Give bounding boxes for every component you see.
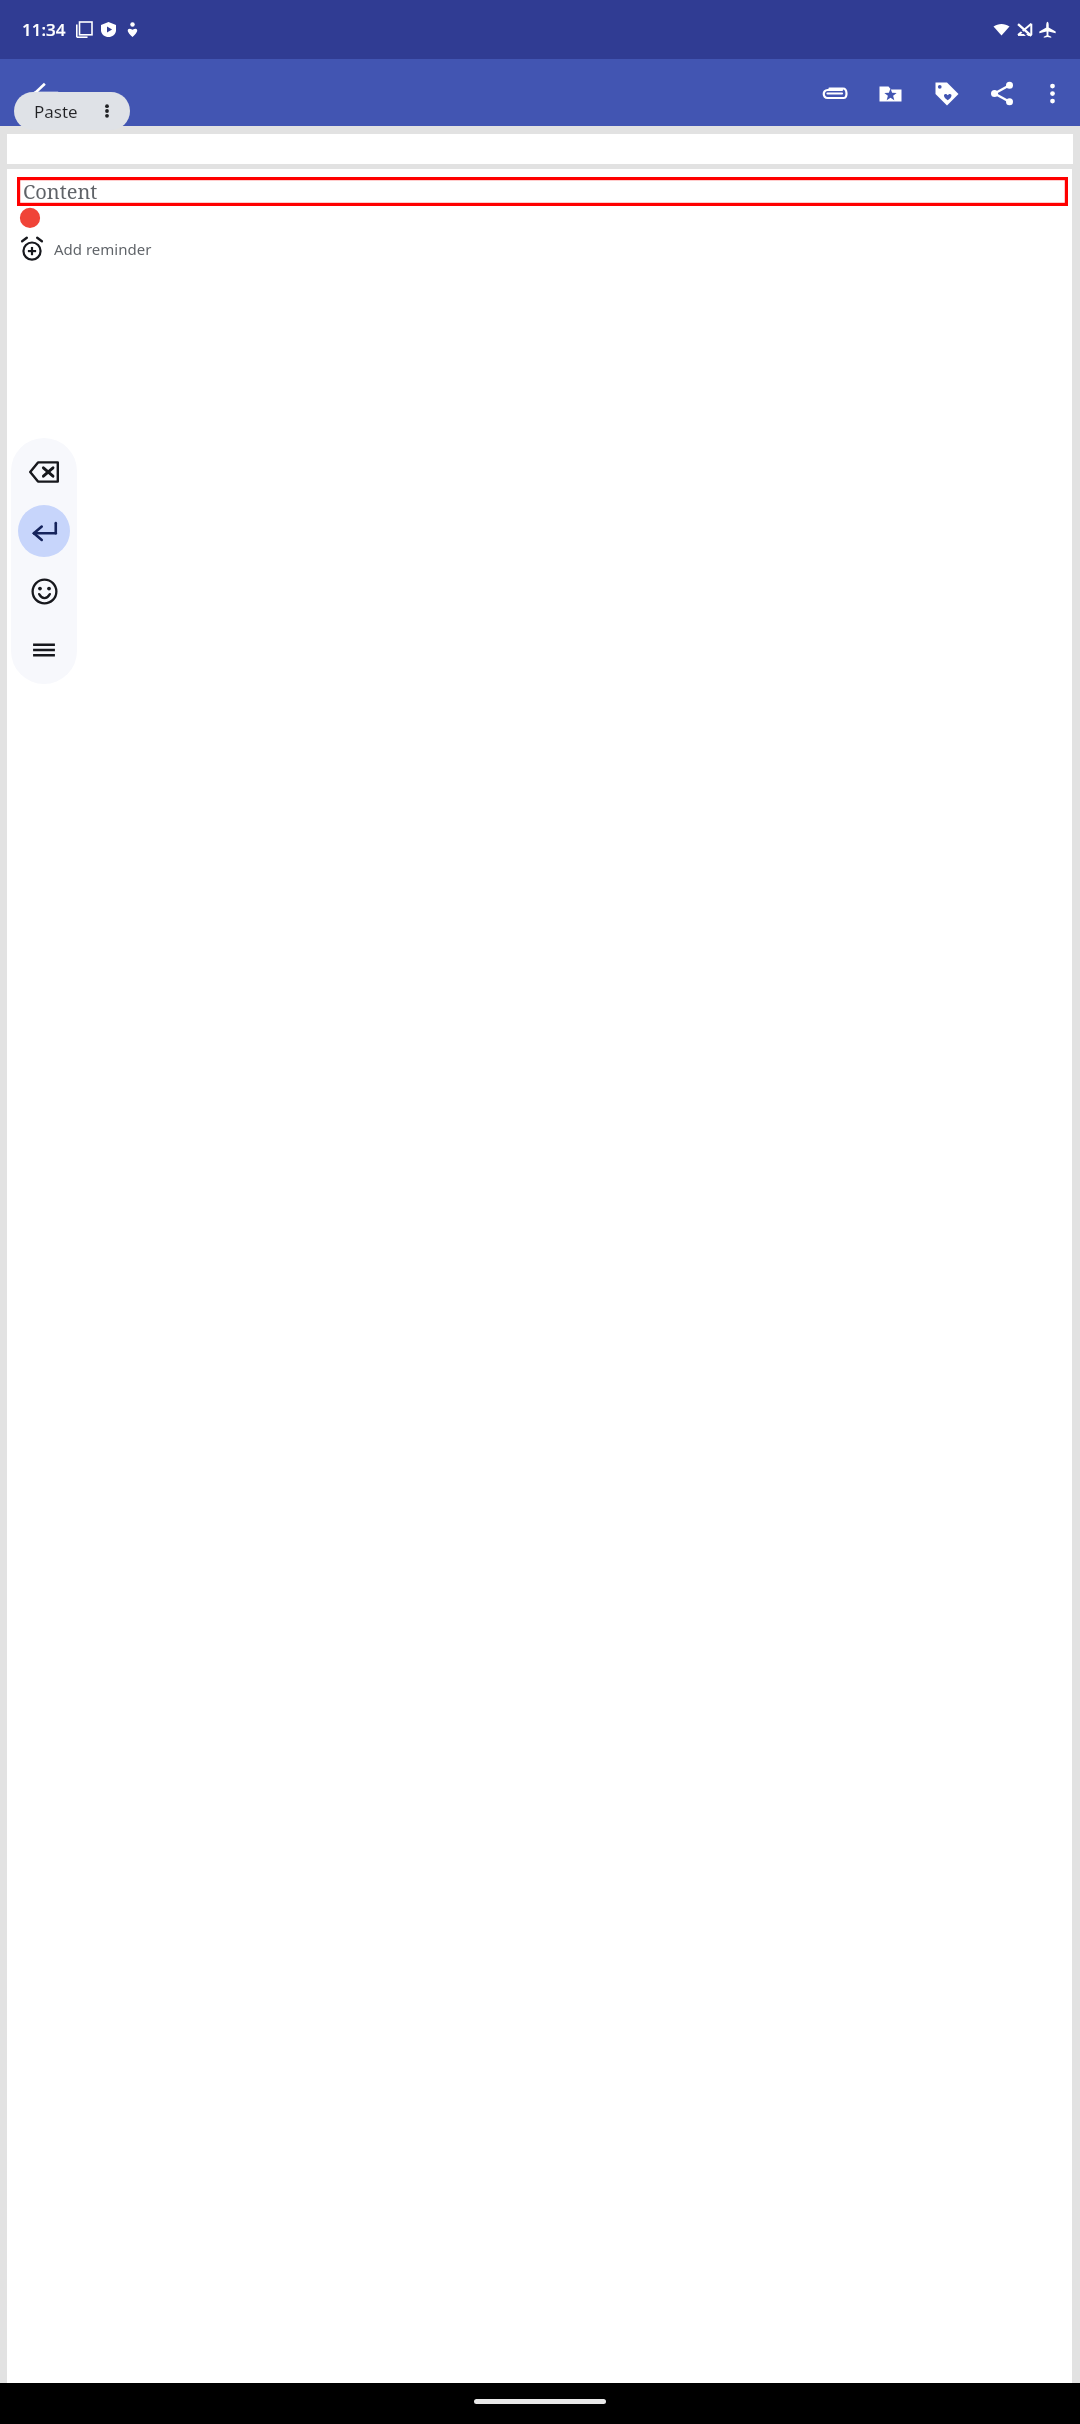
button[interactable]: Attach xyxy=(812,71,856,115)
button[interactable]: Keyboard menu xyxy=(18,624,70,676)
button[interactable]: More options xyxy=(1030,71,1074,115)
button[interactable]: Share xyxy=(980,71,1024,115)
button[interactable]: Content xyxy=(17,177,1068,206)
button[interactable]: Add reminder xyxy=(7,232,1072,266)
staticText: Content xyxy=(23,178,98,205)
staticText: 11:34 xyxy=(22,18,66,41)
button[interactable]: Backspace xyxy=(18,446,70,498)
button[interactable]: Paste xyxy=(14,92,130,130)
button[interactable]: Emoji xyxy=(18,565,70,617)
staticText: Paste xyxy=(34,100,78,123)
button[interactable]: More options xyxy=(94,98,120,124)
staticText: Add reminder xyxy=(54,239,152,259)
button[interactable]: Folder xyxy=(868,71,912,115)
button[interactable]: Enter xyxy=(18,505,70,557)
button[interactable]: Label xyxy=(924,71,968,115)
button[interactable]: Back xyxy=(22,69,70,117)
